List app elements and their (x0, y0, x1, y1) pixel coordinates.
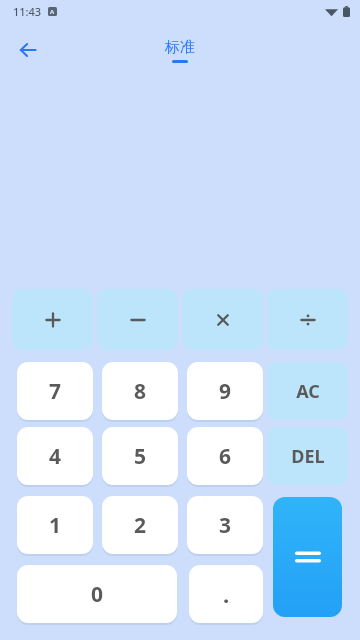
staticText: 6 (219, 442, 232, 471)
button[interactable]: 7 (17, 362, 93, 420)
button[interactable]: × (182, 289, 263, 350)
button[interactable]: AC (267, 362, 348, 420)
staticText: 11:43 (13, 4, 42, 19)
staticText: 0 (91, 580, 104, 609)
staticText: . (223, 579, 230, 609)
staticText: 4 (49, 442, 62, 471)
button[interactable]: 2 (102, 496, 178, 554)
button[interactable]: 5 (102, 427, 178, 485)
staticText: 5 (134, 442, 147, 471)
staticText: 标准 (165, 38, 195, 57)
button[interactable]: 标准 (165, 38, 195, 63)
staticText: 8 (134, 377, 147, 406)
button[interactable]: . (189, 565, 263, 623)
button[interactable]: + (12, 289, 93, 350)
button[interactable]: 6 (187, 427, 263, 485)
button[interactable]: 1 (17, 496, 93, 554)
staticText: AC (296, 379, 320, 404)
button[interactable]: 3 (187, 496, 263, 554)
button[interactable]: − (97, 289, 178, 350)
staticText: 7 (49, 377, 62, 406)
staticText: 2 (134, 511, 147, 540)
button[interactable]: ÷ (267, 289, 348, 350)
button[interactable]: 4 (17, 427, 93, 485)
staticText: 1 (49, 511, 62, 540)
staticText: 9 (219, 377, 232, 406)
button[interactable]: 8 (102, 362, 178, 420)
button[interactable]: 0 (17, 565, 177, 623)
button[interactable]: Back (8, 30, 48, 70)
button[interactable]: Equals (273, 497, 342, 617)
staticText: 3 (219, 511, 232, 540)
button[interactable]: DEL (267, 427, 348, 485)
button[interactable]: 9 (187, 362, 263, 420)
staticText: DEL (291, 444, 325, 469)
staticText: A (50, 8, 55, 16)
